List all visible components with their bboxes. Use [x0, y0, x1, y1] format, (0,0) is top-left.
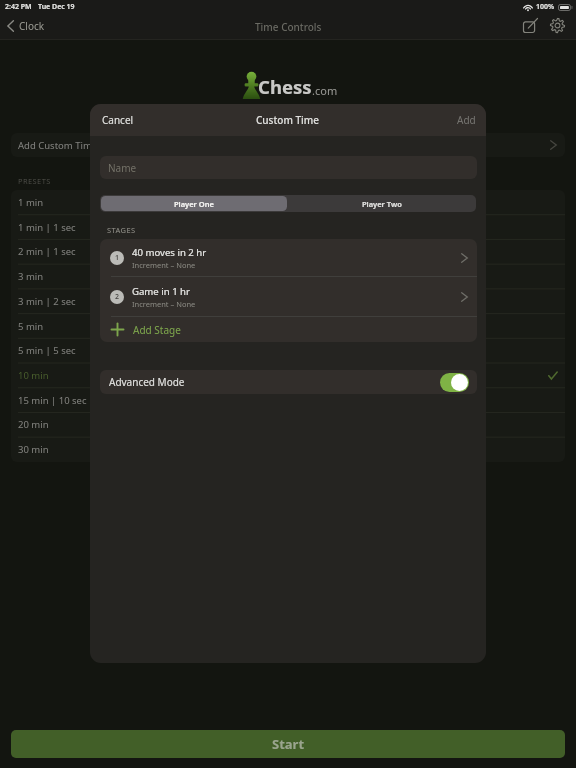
- staticText: Chess: [258, 74, 312, 99]
- button[interactable]: Name: [100, 156, 477, 179]
- button[interactable]: 3 min: [11, 264, 565, 289]
- staticText: 20 min: [18, 418, 49, 431]
- button[interactable]: Edit: [519, 14, 541, 36]
- button[interactable]: Start: [11, 730, 565, 758]
- button[interactable]: Advanced Mode: [100, 370, 477, 394]
- staticText: Custom Time: [256, 113, 320, 127]
- staticText: 2 min | 1 sec: [18, 245, 76, 258]
- button[interactable]: 3 min | 2 sec: [11, 289, 565, 314]
- button[interactable]: 15 min | 10 sec: [11, 388, 565, 413]
- staticText: 2:42 PM: [5, 2, 32, 12]
- button[interactable]: Add Stage: [100, 317, 477, 342]
- staticText: .com: [312, 83, 338, 98]
- button[interactable]: Settings: [546, 14, 568, 36]
- button[interactable]: Player Two: [288, 195, 476, 212]
- button[interactable]: 5 min: [11, 314, 565, 339]
- staticText: Cancel: [102, 113, 134, 127]
- button[interactable]: Add: [445, 108, 486, 132]
- staticText: Name: [108, 161, 137, 175]
- button[interactable]: 5 min | 5 sec: [11, 338, 565, 363]
- staticText: Start: [272, 735, 305, 753]
- staticText: Clock: [19, 19, 45, 33]
- staticText: 15 min | 10 sec: [18, 394, 87, 407]
- staticText: Time Controls: [255, 20, 322, 34]
- button[interactable]: 10 min: [11, 363, 565, 388]
- staticText: Player Two: [362, 199, 402, 209]
- staticText: Increment – None: [132, 260, 196, 270]
- button[interactable]: Player One: [101, 196, 287, 211]
- staticText: Tue Dec 19: [38, 2, 75, 12]
- staticText: 10 min: [18, 369, 49, 382]
- staticText: 2: [115, 292, 120, 302]
- staticText: Increment – None: [132, 299, 196, 309]
- button[interactable]: 1 min: [11, 190, 565, 215]
- staticText: 1 min: [18, 196, 44, 209]
- staticText: Advanced Mode: [109, 375, 185, 389]
- staticText: Add Stage: [133, 323, 181, 337]
- staticText: 5 min | 5 sec: [18, 344, 76, 357]
- staticText: Player One: [174, 199, 214, 209]
- staticText: STAGES: [107, 225, 136, 235]
- button[interactable]: 1: [100, 239, 477, 277]
- button[interactable]: 2 min | 1 sec: [11, 239, 565, 264]
- button[interactable]: Clock: [0, 16, 53, 36]
- staticText: 100%: [536, 2, 555, 12]
- button[interactable]: 1 min | 1 sec: [11, 215, 565, 240]
- button[interactable]: 30 min: [11, 437, 565, 462]
- staticText: 1: [115, 253, 120, 263]
- staticText: Add Custom Time: [18, 139, 98, 152]
- staticText: 3 min | 2 sec: [18, 295, 76, 308]
- staticText: PRESETS: [18, 176, 51, 186]
- staticText: 3 min: [18, 270, 44, 283]
- button[interactable]: Cancel: [90, 108, 146, 132]
- staticText: 30 min: [18, 443, 49, 456]
- button[interactable]: 2: [100, 277, 477, 317]
- staticText: 40 moves in 2 hr: [132, 246, 207, 259]
- staticText: 5 min: [18, 320, 44, 333]
- staticText: 1 min | 1 sec: [18, 221, 76, 234]
- button[interactable]: 20 min: [11, 412, 565, 437]
- button[interactable]: Add Custom Time: [11, 133, 565, 157]
- staticText: Game in 1 hr: [132, 285, 191, 298]
- staticText: Add: [457, 113, 476, 127]
